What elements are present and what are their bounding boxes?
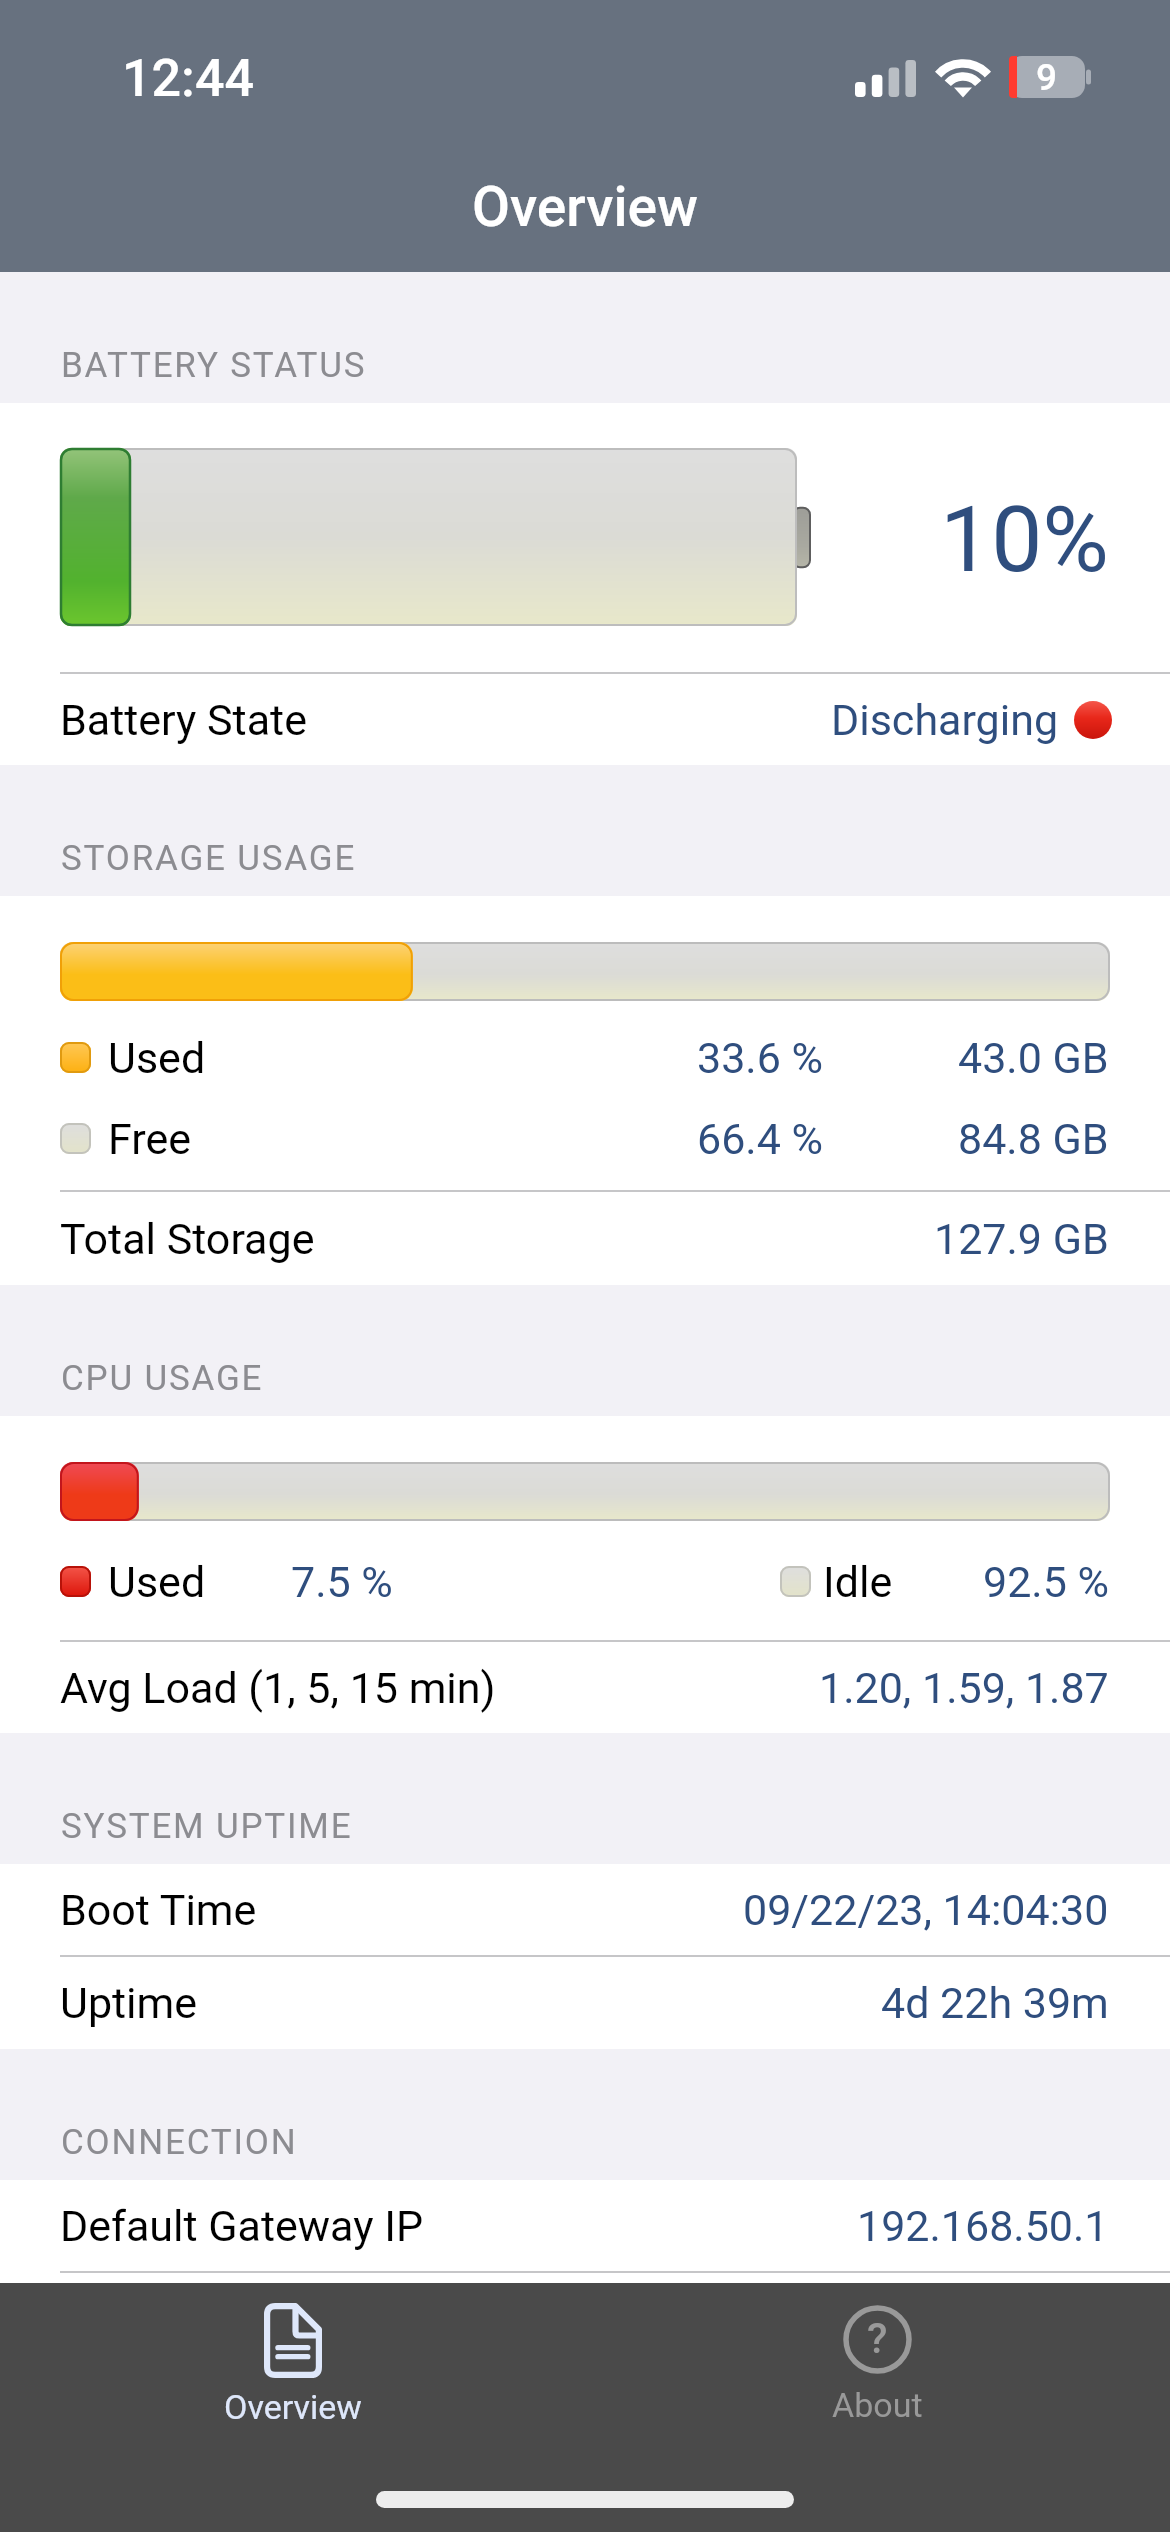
staticText: SYSTEM UPTIME (61, 1806, 353, 1847)
staticText: Used (108, 1033, 206, 1083)
staticText: 43.0 GB (958, 1033, 1109, 1083)
button[interactable]: Avg Load (1, 5, 15 min) (0, 1642, 1170, 1733)
staticText: 84.8 GB (958, 1114, 1109, 1164)
staticText: About (832, 2385, 923, 2425)
staticText: Idle (823, 1557, 893, 1607)
button[interactable]: About tab (585, 2283, 1170, 2443)
staticText: STORAGE USAGE (61, 838, 357, 879)
staticText: Overview (472, 175, 698, 239)
staticText: Overview (224, 2387, 362, 2427)
staticText: 10% (940, 487, 1109, 594)
button[interactable]: Used (0, 1017, 1170, 1098)
staticText: CPU USAGE (61, 1358, 264, 1399)
staticText: 127.9 GB (934, 1214, 1109, 1264)
staticText: ? (867, 2314, 888, 2363)
button[interactable]: Battery State (0, 674, 1170, 765)
staticText: Used (108, 1557, 206, 1607)
button[interactable]: Used (0, 1541, 1170, 1622)
staticText: 9 (1036, 56, 1058, 98)
staticText: 1.20, 1.59, 1.87 (819, 1663, 1109, 1713)
staticText: 33.6 % (697, 1033, 823, 1083)
button[interactable]: Default Gateway IP (0, 2180, 1170, 2271)
staticText: Discharging (831, 695, 1059, 745)
staticText: 09/22/23, 14:04:30 (743, 1885, 1109, 1935)
staticText: 92.5 % (983, 1557, 1109, 1607)
staticText: Battery State (60, 695, 307, 745)
staticText: 192.168.50.1 (857, 2201, 1109, 2251)
staticText: Avg Load (1, 5, 15 min) (60, 1663, 496, 1713)
button[interactable]: Overview tab (0, 2283, 585, 2443)
staticText: Free (108, 1114, 191, 1164)
staticText: Uptime (60, 1978, 198, 2028)
button[interactable]: Total Storage (0, 1192, 1170, 1285)
staticText: CONNECTION (61, 2122, 298, 2163)
staticText: Default Gateway IP (60, 2201, 424, 2251)
staticText: 7.5 % (291, 1557, 393, 1607)
staticText: Boot Time (60, 1885, 257, 1935)
staticText: Total Storage (60, 1214, 315, 1264)
button[interactable]: Uptime (0, 1957, 1170, 2049)
staticText: 12:44 (122, 48, 255, 109)
staticText: 4d 22h 39m (881, 1978, 1109, 2028)
staticText: 66.4 % (697, 1114, 823, 1164)
button[interactable]: Free (0, 1098, 1170, 1179)
staticText: BATTERY STATUS (61, 345, 367, 386)
button[interactable]: Boot Time (0, 1864, 1170, 1955)
